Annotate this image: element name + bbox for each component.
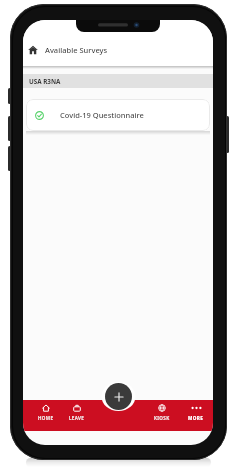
- staticText: Available Surveys: [45, 45, 108, 55]
- staticText: USA R3NA: [29, 77, 61, 86]
- button[interactable]: MORE: [181, 400, 211, 431]
- staticText: MORE: [188, 415, 204, 421]
- button[interactable]: Covid-19 Questionnaire: [26, 99, 210, 131]
- staticText: LEAVE: [69, 415, 85, 421]
- staticText: HOME: [38, 415, 54, 421]
- button[interactable]: KIOSK: [147, 400, 177, 431]
- button[interactable]: [28, 45, 38, 55]
- staticText: Covid-19 Questionnaire: [60, 110, 144, 120]
- staticText: KIOSK: [154, 415, 170, 421]
- button[interactable]: HOME: [31, 400, 61, 431]
- button[interactable]: [105, 383, 132, 410]
- button[interactable]: LEAVE: [62, 400, 92, 431]
